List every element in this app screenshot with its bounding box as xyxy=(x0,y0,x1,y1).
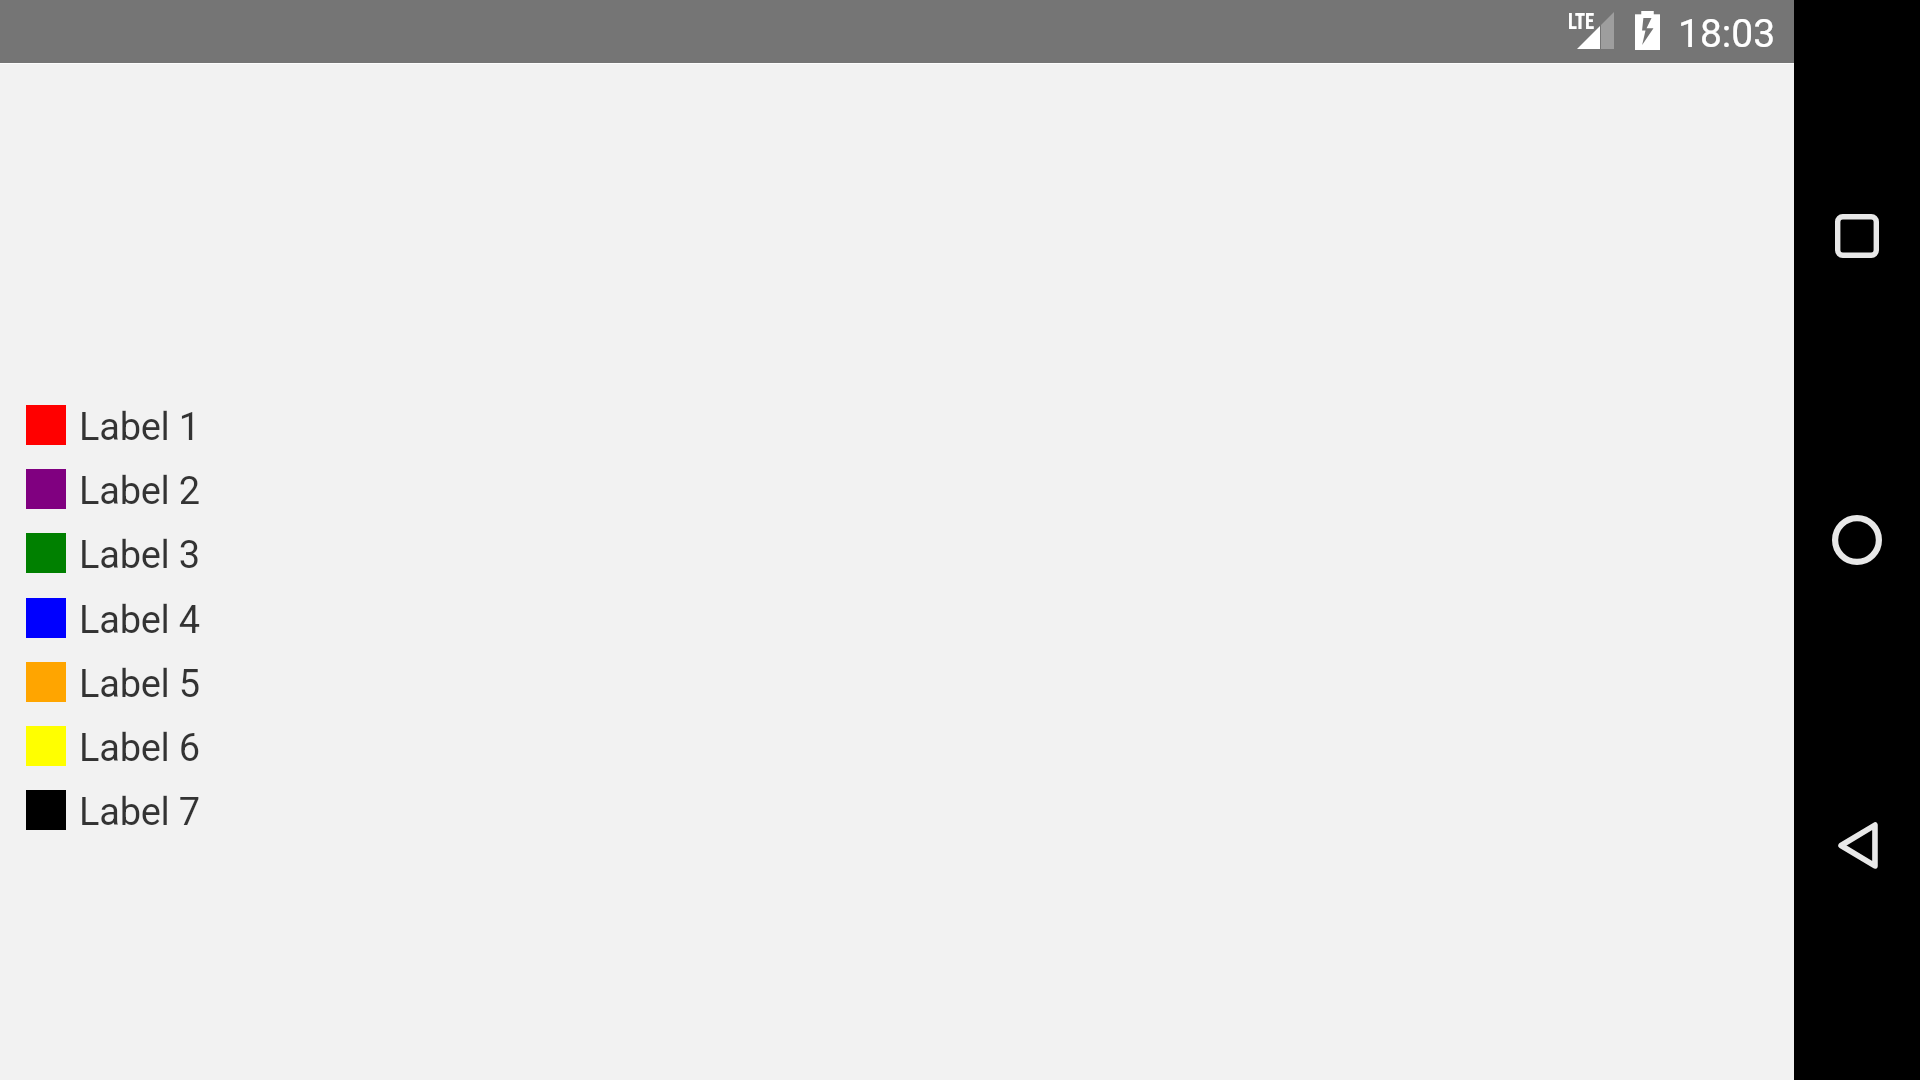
button[interactable]: Label 1 xyxy=(0,405,1794,469)
button[interactable]: Home xyxy=(1821,504,1893,576)
staticText: Label 2 xyxy=(79,469,200,514)
staticText: Label 4 xyxy=(79,598,200,643)
staticText: Label 3 xyxy=(79,533,200,578)
button[interactable]: Label 4 xyxy=(0,598,1794,662)
button[interactable]: Label 3 xyxy=(0,533,1794,597)
button[interactable]: Back xyxy=(1822,809,1894,881)
staticText: Label 6 xyxy=(79,726,200,771)
button[interactable]: Label 6 xyxy=(0,726,1794,790)
other: Battery charging xyxy=(1635,11,1660,50)
staticText: LTE xyxy=(1568,8,1594,34)
staticText: 18:03 xyxy=(1678,11,1776,57)
button[interactable]: Label 5 xyxy=(0,662,1794,726)
staticText: Label 7 xyxy=(79,790,200,835)
button[interactable]: Recent apps xyxy=(1821,200,1893,272)
other: Mobile signal strength xyxy=(1577,12,1614,49)
button[interactable]: Label 7 xyxy=(0,790,1794,854)
button[interactable]: Label 2 xyxy=(0,469,1794,533)
staticText: Label 1 xyxy=(79,405,200,450)
staticText: Label 5 xyxy=(79,662,200,707)
